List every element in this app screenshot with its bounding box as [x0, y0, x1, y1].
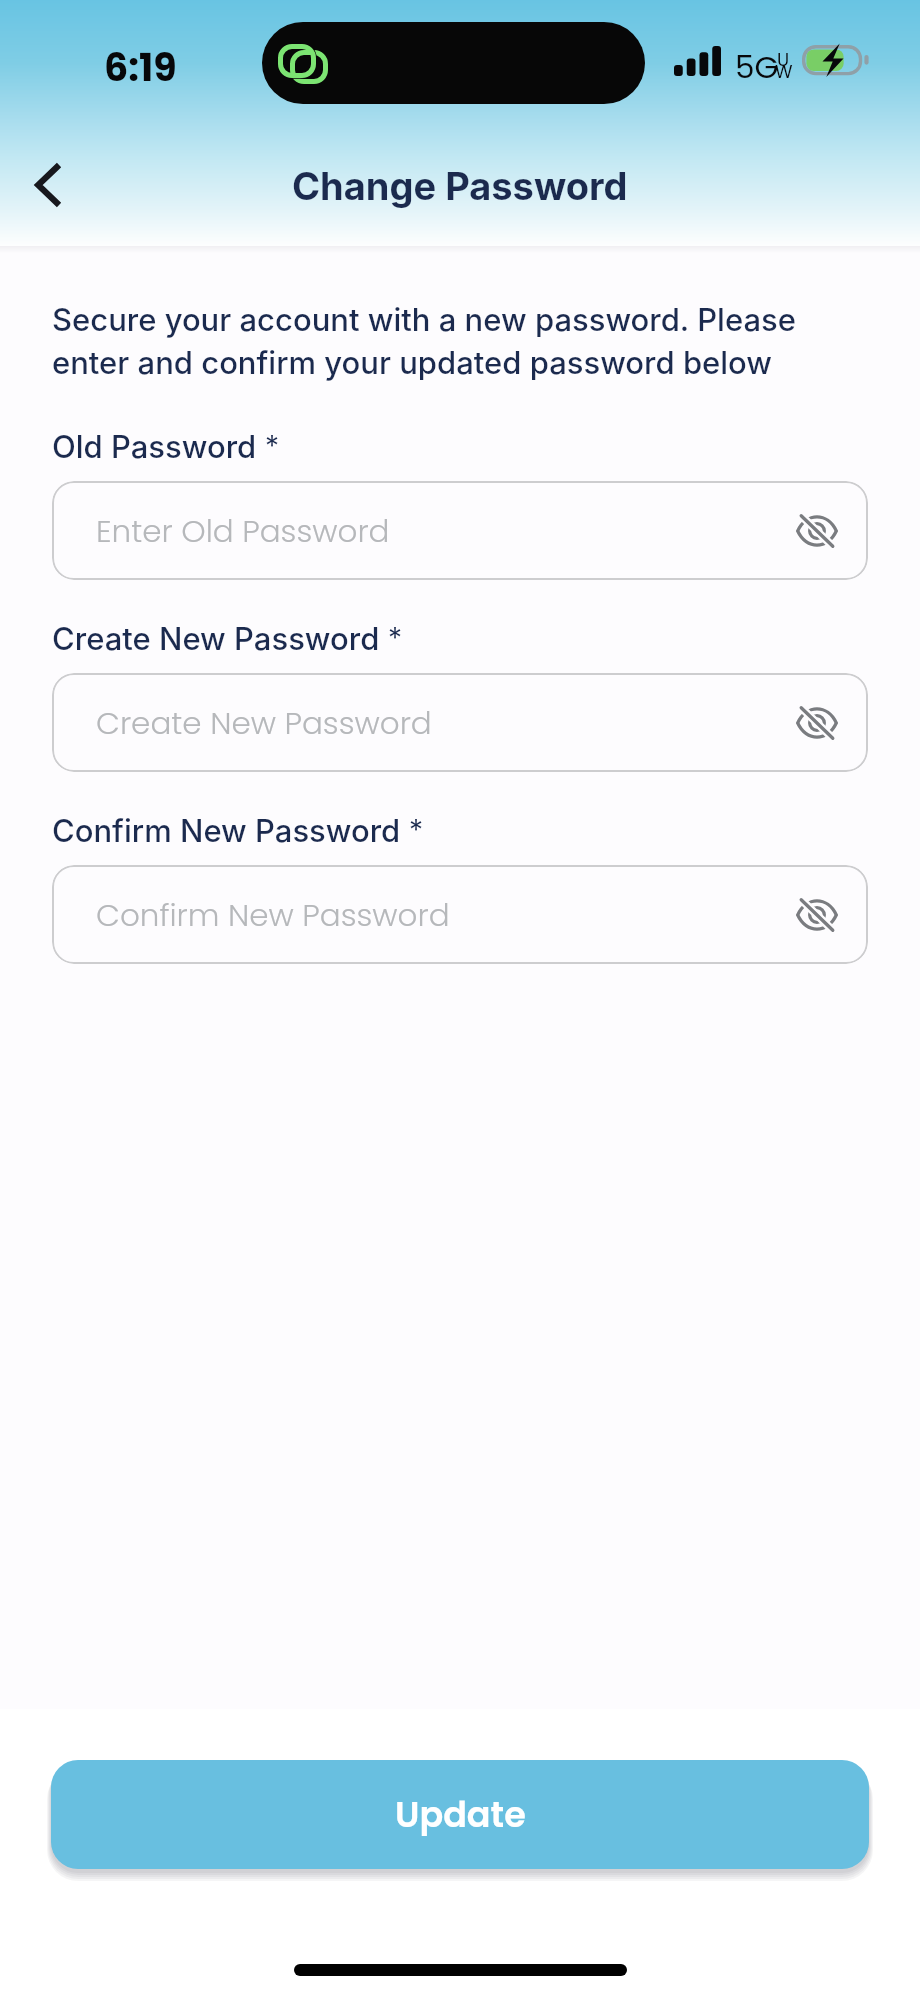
button[interactable]: Show password	[783, 497, 851, 565]
button[interactable]: Update	[51, 1760, 869, 1869]
staticText: *	[257, 429, 279, 463]
button[interactable]: Enter Old Password	[52, 481, 868, 580]
staticText: Update	[395, 1790, 526, 1839]
staticText: Change Password	[292, 163, 628, 209]
staticText: *	[401, 813, 423, 847]
staticText: Confirm New Password	[96, 893, 450, 936]
staticText: Create New Password	[96, 701, 432, 744]
staticText: U	[777, 47, 790, 72]
button[interactable]: Create New Password	[52, 673, 868, 772]
staticText: Old Password	[52, 428, 257, 466]
staticText: Enter Old Password	[96, 509, 390, 552]
staticText: W	[775, 59, 793, 84]
staticText: Create New Password	[52, 620, 380, 658]
staticText: *	[380, 621, 402, 655]
staticText: Confirm New Password	[52, 812, 401, 850]
staticText: 6:19	[104, 41, 177, 94]
button[interactable]: Show password	[783, 881, 851, 949]
staticText: 5G	[735, 45, 779, 88]
button[interactable]: Show password	[783, 689, 851, 757]
button[interactable]: Confirm New Password	[52, 865, 868, 964]
button[interactable]: Back	[11, 145, 83, 225]
staticText: Secure your account with a new password.…	[52, 301, 868, 382]
